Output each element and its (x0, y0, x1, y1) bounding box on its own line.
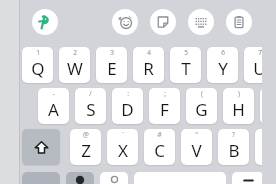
staticText: B (228, 139, 240, 162)
staticText: ( (201, 89, 203, 98)
staticText: @ (83, 130, 89, 139)
staticText: R (143, 57, 154, 80)
staticText: V (191, 139, 202, 162)
staticText: A (48, 98, 59, 121)
staticText: 4 (147, 48, 151, 57)
staticText: G (195, 98, 208, 121)
button[interactable]: - (38, 88, 69, 124)
staticText: 5 (184, 48, 188, 57)
button[interactable]: Emoji (112, 9, 138, 35)
button[interactable]: ? (218, 129, 249, 165)
button[interactable]: ` (107, 129, 138, 165)
button[interactable]: ( (186, 88, 217, 124)
button[interactable]: ; (149, 88, 180, 124)
staticText: U (253, 57, 266, 80)
staticText: - (52, 89, 55, 98)
button[interactable]: Backspace (232, 172, 264, 184)
staticText: Y (218, 57, 228, 80)
staticText: 3 (110, 48, 114, 57)
staticText: D (121, 98, 134, 121)
staticText: " (195, 130, 198, 139)
button[interactable]: 4 (133, 47, 164, 83)
button[interactable]: Shift (22, 129, 60, 165)
button[interactable]: Stickers (150, 9, 176, 35)
button[interactable]: " (181, 129, 212, 165)
staticText: T (181, 57, 191, 80)
staticText: H (232, 98, 245, 121)
staticText: : (127, 89, 129, 98)
button[interactable]: 2 (59, 47, 90, 83)
button[interactable]: ) (223, 88, 254, 124)
staticText: Z (81, 139, 91, 162)
staticText: ; (164, 89, 166, 98)
button[interactable]: 3 (96, 47, 127, 83)
button[interactable]: 7 (244, 47, 275, 83)
staticText: X (118, 139, 128, 162)
button[interactable]: Settings (100, 172, 128, 184)
button[interactable]: Keyboard (188, 9, 214, 35)
staticText: S (86, 98, 96, 121)
staticText: Q (31, 57, 45, 80)
staticText: 2 (73, 48, 77, 57)
button[interactable]: Space (134, 172, 226, 184)
staticText: # (157, 130, 162, 139)
staticText: / (89, 89, 92, 98)
button[interactable]: ~ (260, 88, 276, 124)
staticText: C (154, 139, 165, 162)
staticText: F (160, 98, 169, 121)
button[interactable]: / (75, 88, 106, 124)
staticText: ? (232, 130, 235, 139)
button[interactable]: : (112, 88, 143, 124)
staticText: 7 (258, 48, 262, 57)
button[interactable]: Emoji key (66, 172, 94, 184)
button[interactable]: 1 (22, 47, 53, 83)
button[interactable]: Clipboard (226, 9, 252, 35)
staticText: ` (122, 130, 124, 139)
staticText: 6 (221, 48, 225, 57)
button[interactable]: ! (255, 129, 276, 165)
button[interactable]: # (144, 129, 175, 165)
button[interactable]: 5 (170, 47, 201, 83)
button[interactable]: 6 (207, 47, 238, 83)
staticText: E (107, 57, 117, 80)
button[interactable]: Numbers (22, 172, 60, 184)
staticText: ) (238, 89, 240, 98)
button[interactable]: Grammarly (32, 9, 58, 35)
button[interactable]: @ (70, 129, 101, 165)
staticText: W (67, 57, 83, 80)
staticText: 1 (36, 48, 40, 57)
